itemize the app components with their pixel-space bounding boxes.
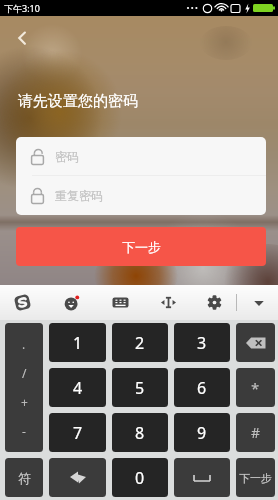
staticText: # bbox=[251, 423, 261, 442]
staticText: 6 bbox=[197, 377, 207, 399]
staticText: 下午3:10 bbox=[4, 2, 40, 14]
staticText: / bbox=[22, 365, 27, 381]
staticText: 3 bbox=[197, 332, 207, 354]
button[interactable]: 4 bbox=[49, 368, 106, 407]
button[interactable]: Hide keyboard bbox=[242, 285, 276, 320]
staticText: 7 bbox=[73, 422, 83, 444]
staticText: 0 bbox=[135, 467, 145, 489]
staticText: . bbox=[22, 336, 26, 352]
button[interactable]: symbols bbox=[5, 323, 43, 452]
staticText: 4 bbox=[73, 377, 83, 399]
button[interactable]: 3 bbox=[174, 323, 230, 362]
button[interactable]: 2 bbox=[112, 323, 168, 362]
button[interactable]: 1 bbox=[49, 323, 106, 362]
staticText: 请先设置您的密码 bbox=[18, 92, 138, 111]
button[interactable]: Emoji bbox=[55, 285, 89, 320]
button[interactable]: 7 bbox=[49, 413, 106, 452]
button[interactable]: 符 bbox=[5, 458, 43, 497]
staticText: 8 bbox=[135, 422, 145, 444]
button[interactable]: Back bbox=[6, 22, 38, 54]
staticText: - bbox=[22, 423, 26, 439]
button[interactable]: 5 bbox=[112, 368, 168, 407]
staticText: 密码 bbox=[55, 149, 79, 164]
button[interactable]: Move cursor bbox=[151, 285, 185, 320]
button[interactable]: Keyboard layout bbox=[103, 285, 137, 320]
button[interactable]: Space bbox=[174, 458, 230, 497]
staticText: 5 bbox=[135, 377, 145, 399]
staticText: + bbox=[21, 394, 28, 410]
button[interactable]: 6 bbox=[174, 368, 230, 407]
staticText: 9 bbox=[197, 422, 207, 444]
button[interactable]: 9 bbox=[174, 413, 230, 452]
staticText: 下一步 bbox=[122, 239, 161, 255]
staticText: * bbox=[251, 378, 260, 398]
button[interactable]: Return bbox=[49, 458, 106, 497]
staticText: 2 bbox=[135, 332, 145, 354]
button[interactable]: 密码 bbox=[16, 137, 266, 175]
button[interactable]: 8 bbox=[112, 413, 168, 452]
button[interactable]: 下一步 bbox=[16, 227, 266, 266]
button[interactable]: # bbox=[236, 413, 275, 452]
button[interactable]: 下一步 bbox=[236, 458, 275, 497]
button[interactable]: 重复密码 bbox=[16, 176, 266, 215]
staticText: 下一步 bbox=[239, 471, 272, 485]
button[interactable]: 0 bbox=[112, 458, 168, 497]
staticText: 符 bbox=[18, 470, 31, 486]
button[interactable]: Settings bbox=[197, 285, 231, 320]
button[interactable]: Sogou input bbox=[5, 285, 39, 320]
button[interactable]: Backspace bbox=[236, 323, 275, 362]
staticText: 重复密码 bbox=[55, 188, 103, 203]
button[interactable]: * bbox=[236, 368, 275, 407]
staticText: 1 bbox=[73, 332, 83, 354]
